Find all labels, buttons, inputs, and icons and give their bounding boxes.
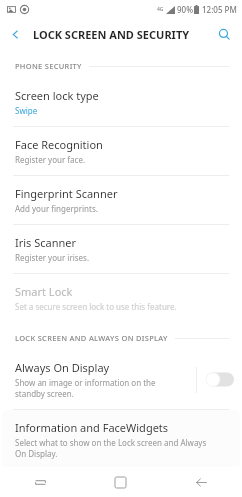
staticText: Show an image or information on the stan… — [15, 377, 156, 399]
button[interactable]: Always On Display — [0, 350, 242, 409]
button[interactable]: Back — [0, 19, 30, 49]
button[interactable]: Face Recognition — [0, 127, 242, 175]
staticText: 4G — [157, 6, 164, 13]
button[interactable]: Notifications on — [206, 480, 234, 487]
staticText: Add your fingerprints. — [15, 203, 98, 214]
staticText: Information and FaceWidgets — [15, 420, 169, 435]
button[interactable]: Information and FaceWidgets — [2, 410, 240, 469]
button[interactable]: Search — [210, 20, 238, 48]
button[interactable]: Fingerprint Scanner — [0, 176, 242, 224]
staticText: LOCK SCREEN AND SECURITY — [33, 27, 190, 42]
staticText: Screen lock type — [15, 88, 99, 103]
staticText: Always On Display — [15, 360, 110, 375]
staticText: Swipe — [15, 105, 38, 116]
button[interactable]: Always On Display off — [206, 371, 234, 388]
button[interactable]: Iris Scanner — [0, 225, 242, 273]
staticText: LOCK SCREEN AND ALWAYS ON DISPLAY — [15, 333, 168, 343]
button[interactable]: Screen lock type — [0, 78, 242, 126]
staticText: Iris Scanner — [15, 235, 77, 250]
staticText: Set a secure screen lock to use this fea… — [15, 301, 177, 312]
staticText: Register your irises. — [15, 252, 90, 263]
button[interactable]: Back — [161, 467, 242, 497]
button[interactable]: Notifications — [0, 470, 242, 497]
button[interactable]: Recents — [0, 467, 80, 497]
staticText: Register your face. — [15, 154, 86, 165]
staticText: Select what to show on the Lock screen a… — [15, 437, 207, 459]
staticText: 12:05 PM — [202, 4, 237, 15]
staticText: Notifications — [15, 480, 81, 487]
staticText: PHONE SECURITY — [15, 61, 82, 71]
staticText: Face Recognition — [15, 137, 103, 152]
button[interactable]: Home — [80, 467, 161, 497]
button[interactable]: Smart Lock — [0, 274, 242, 322]
staticText: 90% — [177, 4, 193, 15]
staticText: Smart Lock — [15, 284, 73, 299]
staticText: Fingerprint Scanner — [15, 186, 118, 201]
